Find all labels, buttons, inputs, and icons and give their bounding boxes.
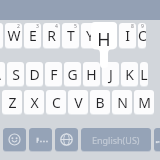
staticText: I [125,26,130,45]
staticText: 9 [141,23,144,30]
button[interactable]: C [46,90,66,114]
button[interactable]: A [0,62,5,86]
button[interactable]: G [64,62,81,86]
staticText: U [103,26,114,45]
staticText: N [117,93,128,112]
button[interactable]: English(US) [81,128,151,151]
staticText: B [95,93,105,112]
staticText: A [0,65,1,84]
button[interactable]: L [140,62,148,86]
staticText: H [91,27,117,52]
button[interactable]: B [90,90,110,114]
staticText: English(US) [92,134,140,146]
button[interactable]: O [138,23,146,48]
staticText: Y [86,26,94,45]
staticText: L [140,65,148,84]
staticText: Z [8,93,17,112]
button[interactable]: Y [81,23,98,48]
staticText: X [30,93,39,112]
staticText: M [138,93,151,112]
button[interactable]: S [7,62,24,86]
button[interactable]: D [26,62,43,86]
staticText: 5 [74,23,77,30]
staticText: 3 [36,23,39,30]
button[interactable]: T [62,23,79,48]
button[interactable]: X [24,90,44,114]
button[interactable]: Switch language [55,128,78,151]
button[interactable]: Period [154,128,160,151]
button[interactable]: Z [2,90,22,114]
button[interactable]: I [119,23,136,48]
button[interactable]: Q [0,23,3,48]
staticText: F [50,65,58,84]
staticText: W [7,26,21,45]
button[interactable]: F [45,62,62,86]
staticText: C [52,93,61,112]
button[interactable]: M [134,90,154,114]
staticText: S [12,65,20,84]
button[interactable]: R [43,23,60,48]
staticText: O [138,26,146,45]
staticText: G [67,65,78,84]
staticText: H [86,65,97,84]
staticText: 4 [55,23,58,30]
staticText: J [109,65,113,84]
staticText: V [74,93,83,112]
button[interactable]: N [112,90,132,114]
staticText: K [125,65,134,84]
staticText: R [47,26,56,45]
button[interactable]: V [68,90,88,114]
button[interactable]: Emoji [3,128,26,151]
staticText: 2 [17,23,20,30]
button[interactable]: U [100,23,117,48]
staticText: E [29,26,37,45]
button[interactable]: K [121,62,138,86]
button[interactable]: Comma [29,128,52,151]
staticText: T [67,26,75,45]
button[interactable]: H [83,62,100,86]
button[interactable]: J [102,62,119,86]
staticText: D [29,65,40,84]
staticText: 8 [131,23,134,30]
button[interactable]: W [5,23,22,48]
button[interactable]: E [24,23,41,48]
